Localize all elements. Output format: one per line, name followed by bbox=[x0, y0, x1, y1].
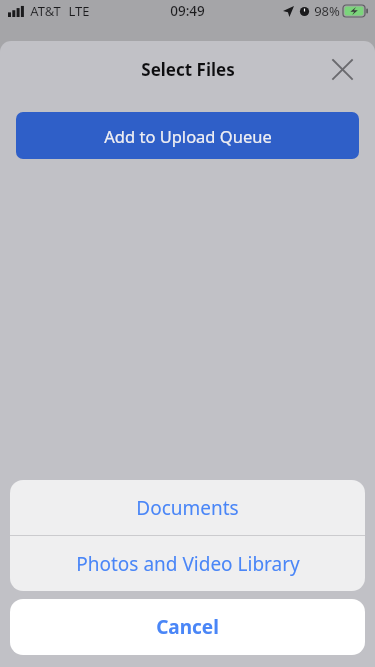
button[interactable]: Close bbox=[325, 52, 359, 86]
button[interactable]: Add to Upload Queue bbox=[16, 112, 359, 159]
staticText: Add to Upload Queue bbox=[104, 125, 272, 147]
staticText: LTE bbox=[68, 2, 90, 20]
staticText: Cancel bbox=[156, 614, 219, 640]
staticText: 98% bbox=[314, 2, 340, 20]
staticText: Photos and Video Library bbox=[76, 551, 300, 577]
staticText: 09:49 bbox=[170, 2, 205, 20]
staticText: Documents bbox=[136, 495, 239, 521]
staticText: Select Files bbox=[141, 58, 235, 81]
staticText: AT&T bbox=[30, 2, 61, 20]
button[interactable]: Photos and Video Library bbox=[10, 536, 365, 591]
button[interactable]: Documents bbox=[10, 480, 365, 535]
button[interactable]: Cancel bbox=[10, 599, 365, 655]
